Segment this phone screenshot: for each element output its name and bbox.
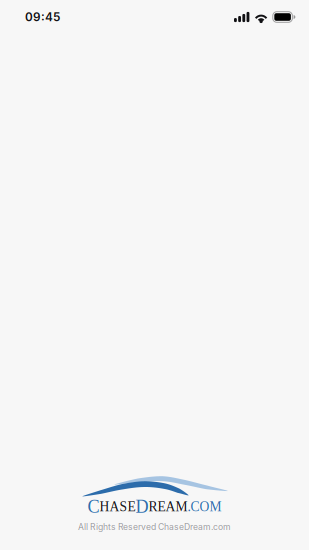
staticText: .COM [187,499,221,514]
staticText: C [87,496,99,517]
staticText: HASE [99,499,135,514]
staticText: REAM [148,499,187,514]
staticText: 09:45 [25,10,60,24]
staticText: D [135,496,148,517]
staticText: All Rights Reserved ChaseDream.com [78,522,231,532]
